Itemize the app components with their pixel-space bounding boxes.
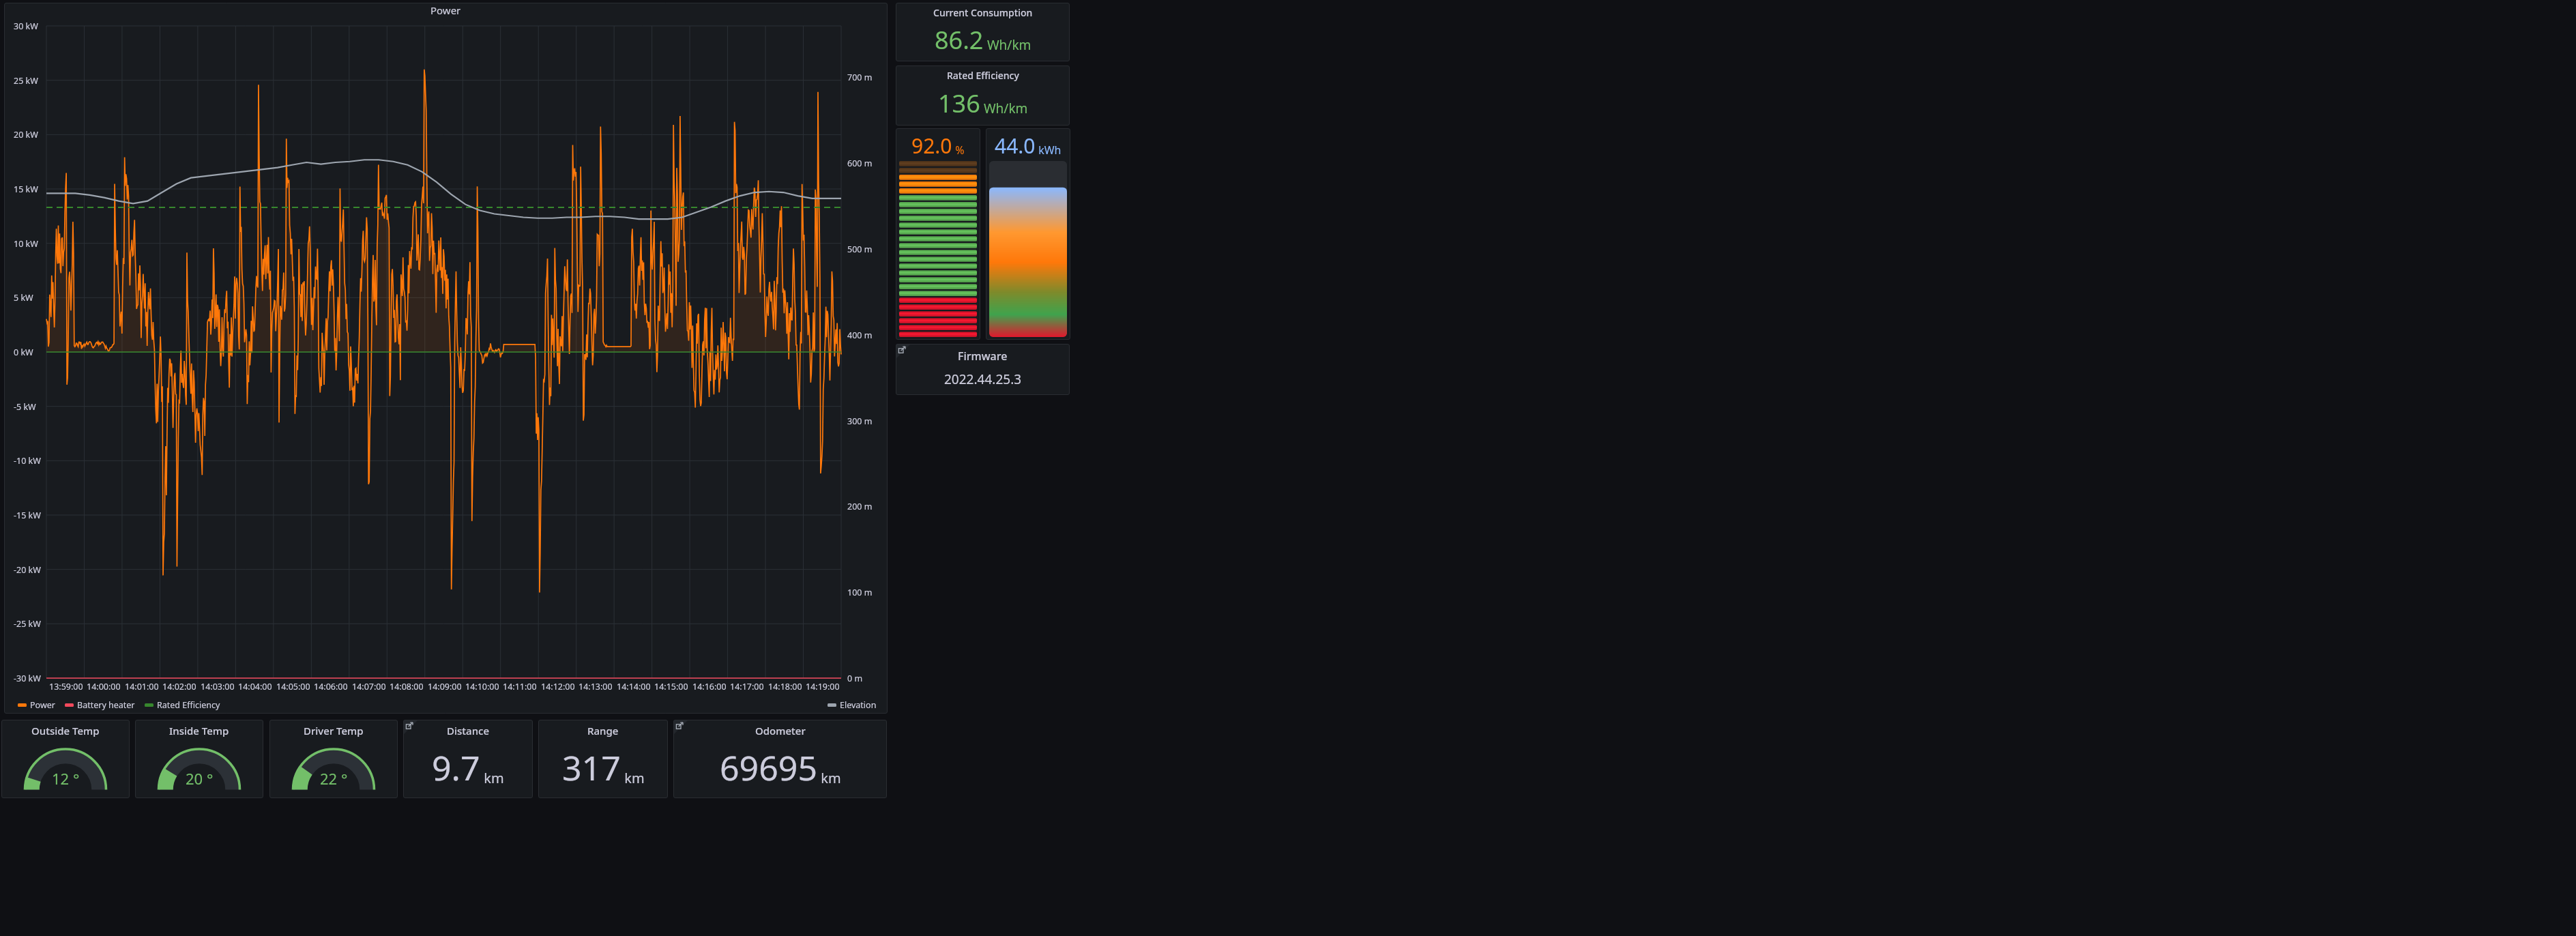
staticText: km [817,769,841,787]
button[interactable]: Elevation [828,699,877,711]
button[interactable]: Distance [403,720,533,798]
staticText: -30 kW [14,673,41,684]
staticText: 300 m [847,415,873,427]
staticText: Wh/km [980,100,1028,117]
staticText: 14:04:00 [238,681,272,692]
staticText: Current Consumption [933,6,1033,19]
staticText: 14:09:00 [428,681,462,692]
staticText: 44.0 [995,132,1036,160]
staticText: 0 kW [14,347,41,358]
button[interactable]: Firmware [896,344,1070,395]
staticText: -20 kW [14,564,41,576]
button[interactable]: Rated Efficiency [145,699,220,711]
staticText: Battery heater [77,699,135,711]
staticText: Elevation [840,699,877,711]
staticText: 14:02:00 [162,681,196,692]
staticText: Odometer [755,724,806,737]
button[interactable]: Rated Efficiency [896,65,1070,126]
staticText: -25 kW [14,618,41,630]
staticText: 14:08:00 [390,681,424,692]
staticText: 14:06:00 [314,681,348,692]
staticText: 10 kW [14,238,41,250]
staticText: 500 m [847,244,873,255]
staticText: 22 ° [320,768,348,789]
button[interactable]: Open panel link [673,720,688,735]
staticText: 14:12:00 [541,681,575,692]
staticText: -5 kW [14,401,41,413]
staticText: 25 kW [14,75,41,87]
button[interactable]: Battery heater [65,699,135,711]
staticText: 14:07:00 [352,681,386,692]
button[interactable]: Power [4,3,888,714]
staticText: -15 kW [14,510,41,521]
staticText: 20 ° [186,768,214,789]
staticText: 92.0 [911,132,952,160]
staticText: 100 m [847,587,873,598]
staticText: 20 kW [14,129,41,141]
button[interactable]: 92.0 [896,128,980,340]
staticText: -10 kW [14,455,41,467]
staticText: kWh [1036,143,1062,158]
staticText: 15 kW [14,184,41,195]
button[interactable]: Open panel link [896,344,911,359]
staticText: Wh/km [984,36,1031,54]
button[interactable]: Range [538,720,668,798]
button[interactable]: 44.0 [986,128,1070,340]
button[interactable]: Current Consumption [896,3,1070,61]
staticText: 12 ° [52,768,80,789]
staticText: 14:01:00 [125,681,159,692]
staticText: Rated Efficiency [947,69,1019,82]
staticText: Firmware [958,349,1008,364]
staticText: 86.2 [935,23,984,57]
staticText: 2022.44.25.3 [944,370,1022,388]
staticText: Power [30,699,55,711]
staticText: 700 m [847,72,873,83]
staticText: 30 kW [14,20,41,32]
staticText: 600 m [847,158,873,169]
staticText: Outside Temp [31,724,100,737]
staticText: Rated Efficiency [157,699,220,711]
staticText: 200 m [847,501,873,512]
staticText: 14:03:00 [201,681,235,692]
staticText: 14:11:00 [503,681,537,692]
staticText: 14:17:00 [730,681,764,692]
button[interactable]: Open panel link [403,720,418,735]
staticText: 69695 [720,744,817,791]
staticText: 14:05:00 [276,681,310,692]
staticText: Inside Temp [169,724,229,737]
staticText: Distance [447,724,490,737]
staticText: 136 [938,87,980,120]
staticText: 14:14:00 [617,681,651,692]
button[interactable]: Power [18,699,55,711]
button[interactable]: Odometer [673,720,887,798]
staticText: 13:59:00 [49,681,83,692]
staticText: Driver Temp [304,724,364,737]
staticText: 5 kW [14,292,41,304]
staticText: 400 m [847,330,873,341]
staticText: 14:10:00 [465,681,499,692]
staticText: Range [587,724,619,737]
staticText: km [480,769,504,787]
button[interactable]: Outside Temp [1,720,130,798]
staticText: 14:18:00 [768,681,802,692]
staticText: 0 m [847,673,863,684]
staticText: 317 [562,744,621,791]
staticText: Power [430,3,461,17]
staticText: 14:15:00 [654,681,688,692]
button[interactable]: Driver Temp [269,720,398,798]
staticText: % [952,143,965,158]
staticText: 9.7 [432,744,480,791]
staticText: 14:13:00 [579,681,613,692]
button[interactable]: Inside Temp [135,720,263,798]
staticText: 14:19:00 [806,681,840,692]
staticText: km [621,769,645,787]
staticText: 14:16:00 [692,681,727,692]
staticText: 14:00:00 [87,681,121,692]
